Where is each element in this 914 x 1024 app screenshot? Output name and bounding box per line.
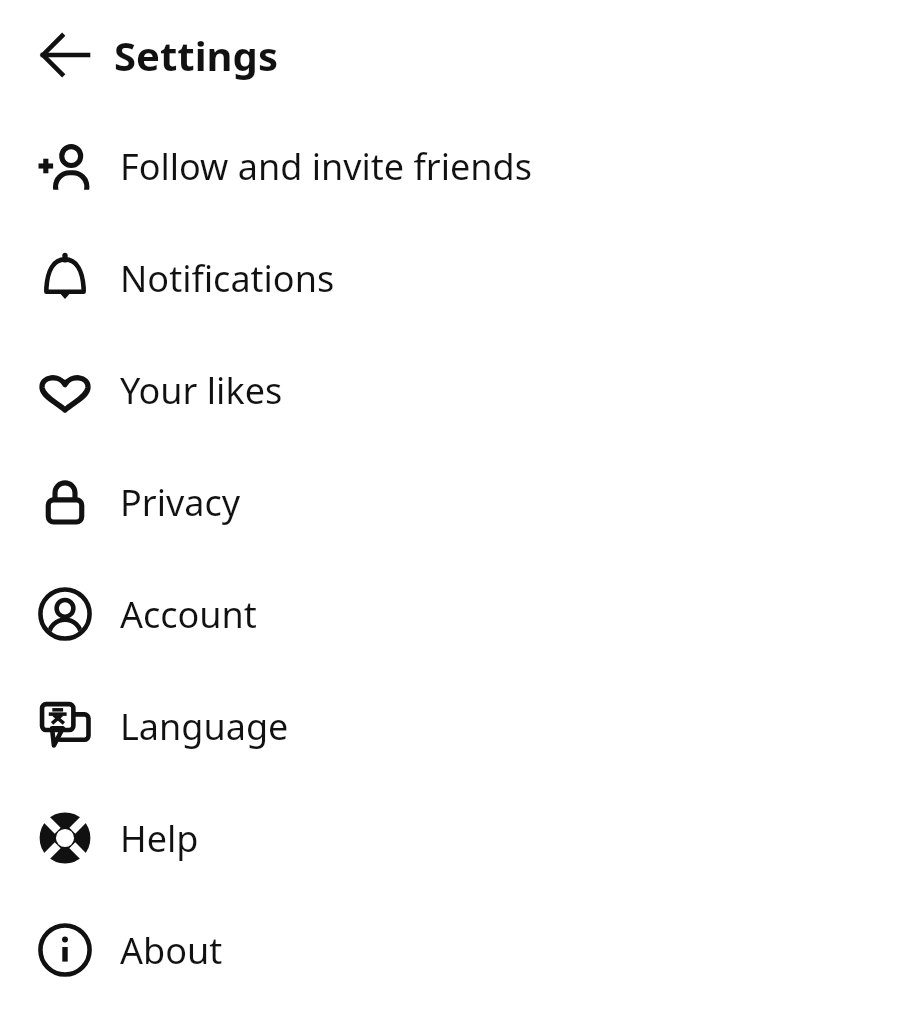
button[interactable]: Privacy (0, 446, 914, 558)
button[interactable]: Notifications (0, 222, 914, 334)
staticText: About (120, 926, 223, 975)
staticText: Notifications (120, 254, 335, 303)
staticText: Language (120, 702, 289, 751)
button[interactable]: Help (0, 782, 914, 894)
staticText: Settings (114, 28, 278, 82)
button[interactable]: Follow and invite friends (0, 110, 914, 222)
staticText: Your likes (120, 366, 283, 415)
button[interactable]: Language (0, 670, 914, 782)
button[interactable]: About (0, 894, 914, 1006)
staticText: Privacy (120, 478, 241, 527)
staticText: Account (120, 590, 257, 639)
staticText: Help (120, 814, 199, 863)
button[interactable]: Account (0, 558, 914, 670)
button[interactable]: Back (26, 16, 104, 94)
button[interactable]: Your likes (0, 334, 914, 446)
staticText: Follow and invite friends (120, 142, 532, 191)
